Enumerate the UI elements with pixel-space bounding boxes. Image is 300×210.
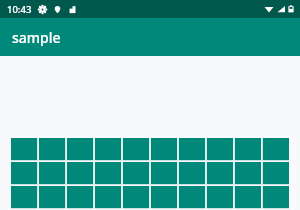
staticText: 10:43 xyxy=(7,3,32,16)
button[interactable]: Grid of cells xyxy=(11,138,289,210)
button[interactable]: sample xyxy=(0,18,300,56)
staticText: sample xyxy=(12,28,61,47)
